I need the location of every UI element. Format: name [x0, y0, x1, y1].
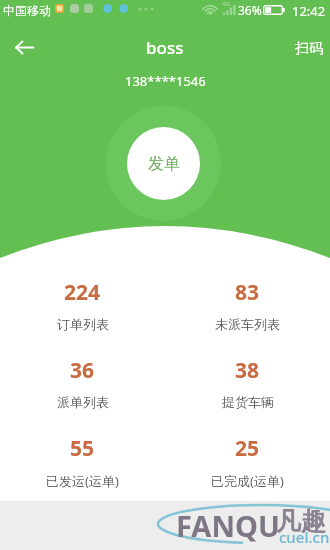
button[interactable]: 发单 — [127, 127, 200, 200]
button[interactable]: 224 — [0, 278, 165, 356]
button[interactable]: 83 — [165, 278, 330, 356]
staticText: 已完成(运单) — [211, 472, 284, 490]
button[interactable]: 扫码 — [293, 34, 325, 64]
button[interactable]: Back — [5, 28, 43, 66]
staticText: 36% — [238, 2, 262, 18]
staticText: 12:42 — [292, 2, 326, 20]
staticText: 中国移动 — [3, 3, 51, 18]
staticText: 55 — [70, 434, 95, 463]
staticText: FANQU — [176, 506, 280, 545]
staticText: 扫码 — [295, 40, 323, 58]
staticText: 224 — [64, 278, 101, 307]
staticText: cuel.cn — [279, 527, 330, 547]
button[interactable]: 38 — [165, 356, 330, 434]
staticText: 未派车列表 — [215, 316, 280, 332]
staticText: 凡趣 — [276, 506, 326, 537]
staticText: 派单列表 — [57, 394, 109, 410]
staticText: 4G — [222, 0, 230, 8]
staticText: boss — [146, 36, 184, 59]
button[interactable]: 36 — [0, 356, 165, 434]
staticText: 25 — [235, 434, 260, 463]
button[interactable]: 55 — [0, 434, 165, 512]
staticText: 发单 — [148, 154, 180, 174]
staticText: 36 — [70, 356, 95, 385]
staticText: 83 — [235, 278, 260, 307]
staticText: 38 — [235, 356, 260, 385]
staticText: 提货车辆 — [222, 394, 274, 410]
button[interactable]: 25 — [165, 434, 330, 512]
staticText: 订单列表 — [57, 316, 109, 332]
staticText: 138****1546 — [125, 72, 206, 90]
staticText: 已发运(运单) — [46, 472, 119, 490]
